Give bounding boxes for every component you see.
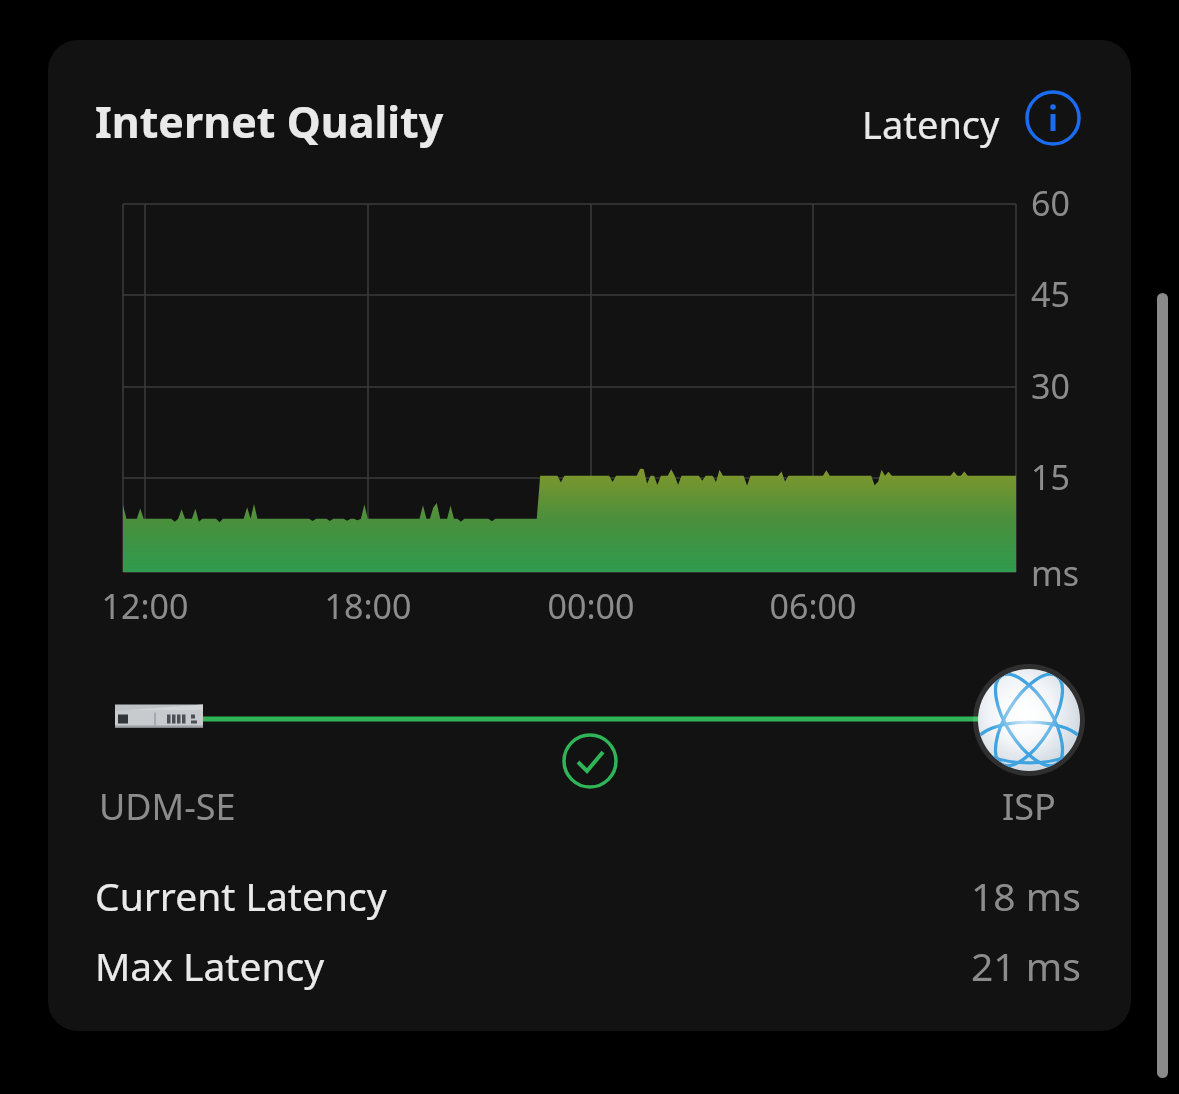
button[interactable]: Internet Quality latency card bbox=[0, 0, 1179, 1094]
